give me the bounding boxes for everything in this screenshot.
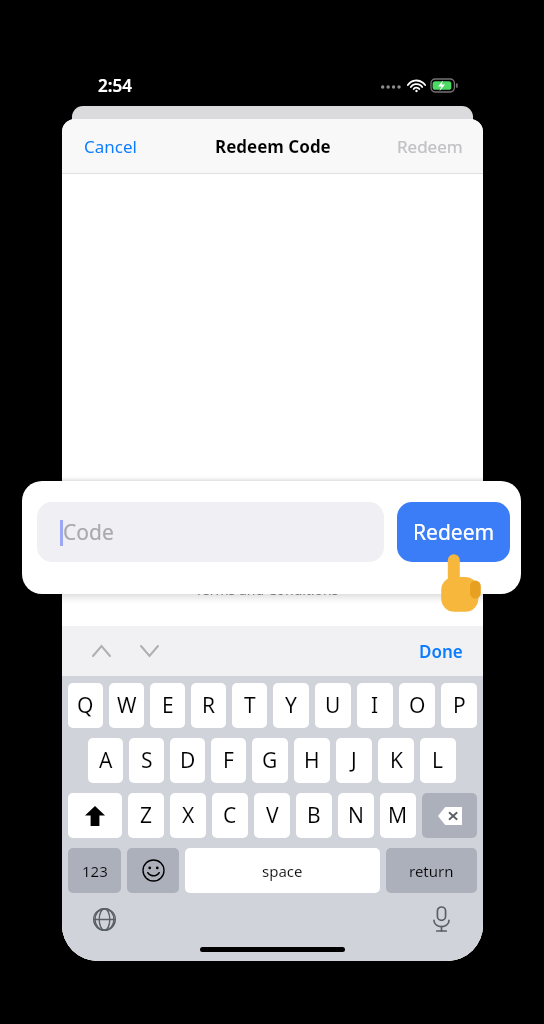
button[interactable]: N [338,793,374,838]
staticText: S [141,746,153,775]
button[interactable]: Z [128,793,164,838]
button[interactable]: J [336,738,372,783]
staticText: U [325,691,341,720]
button[interactable]: C [212,793,248,838]
staticText: L [432,746,444,775]
button[interactable]: A [88,738,123,783]
staticText: Done [419,640,463,663]
staticText: E [162,691,174,720]
staticText: return [409,861,454,881]
button[interactable]: I [357,683,393,728]
button[interactable]: T [232,683,267,728]
staticText: K [390,746,403,775]
staticText: M [388,801,408,830]
button[interactable]: G [252,738,288,783]
button[interactable]: Q [68,683,103,728]
button[interactable]: K [378,738,414,783]
staticText: Code [63,518,114,547]
button[interactable]: 123 [68,848,121,893]
button[interactable]: Code [37,502,384,562]
button[interactable]: Y [273,683,309,728]
button[interactable]: W [109,683,144,728]
staticText: C [223,801,237,830]
button[interactable]: O [399,683,435,728]
button[interactable]: E [150,683,185,728]
button[interactable]: D [170,738,205,783]
button[interactable]: Cancel [62,125,159,168]
staticText: V [266,801,279,830]
staticText: 123 [82,861,108,881]
staticText: Redeem [397,135,463,158]
staticText: F [223,746,234,775]
button[interactable]: S [129,738,164,783]
button[interactable]: Previous field [84,634,118,668]
button[interactable]: Next field [132,634,166,668]
staticText: R [202,691,216,720]
staticText: G [262,746,278,775]
staticText: W [117,691,137,720]
staticText: Redeem Code [215,135,331,158]
button[interactable]: Terms and Conditions › [195,580,350,599]
staticText: T [244,691,256,720]
button[interactable]: P [441,683,477,728]
button[interactable]: F [211,738,246,783]
staticText: B [307,801,321,830]
button[interactable]: M [380,793,416,838]
staticText: D [180,746,196,775]
staticText: X [182,801,195,830]
staticText: Z [140,801,153,830]
button[interactable]: Shift [68,793,122,838]
button[interactable]: Change keyboard [86,901,122,937]
staticText: H [304,746,320,775]
button[interactable]: Done [399,632,483,671]
staticText: Y [285,691,297,720]
button[interactable]: R [191,683,226,728]
staticText: J [351,746,357,775]
button[interactable]: return [386,848,477,893]
staticText: O [409,691,426,720]
button[interactable]: H [294,738,330,783]
staticText: P [453,691,466,720]
button[interactable]: V [254,793,290,838]
button[interactable]: Dictation [423,901,459,937]
button[interactable]: Redeem [377,125,483,168]
button[interactable]: B [296,793,332,838]
staticText: Q [77,691,94,720]
staticText: N [348,801,364,830]
button[interactable]: U [315,683,351,728]
staticText: I [371,691,379,720]
button[interactable]: Backspace [422,793,477,838]
staticText: Cancel [84,135,137,158]
button[interactable]: space [185,848,380,893]
button[interactable]: L [420,738,456,783]
staticText: A [99,746,113,775]
staticText: space [262,861,303,881]
staticText: Redeem [413,518,495,547]
button[interactable]: Redeem [397,502,510,562]
button[interactable]: X [170,793,206,838]
staticText: 2:54 [98,74,132,97]
button[interactable]: Emoji [127,848,179,893]
